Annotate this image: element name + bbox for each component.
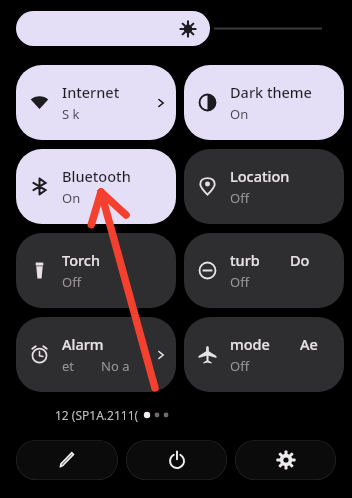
button[interactable]: Bluetooth xyxy=(16,149,176,224)
staticText: Location xyxy=(230,166,290,186)
button[interactable]: Power xyxy=(126,440,227,480)
button[interactable]: Brightness xyxy=(16,11,210,46)
button[interactable]: turb Do xyxy=(184,233,344,308)
staticText: Off xyxy=(230,189,250,207)
staticText: On xyxy=(230,105,249,123)
button[interactable]: Settings xyxy=(235,440,336,480)
staticText: 12 (SP1A.2111( xyxy=(55,407,139,423)
button[interactable]: Location xyxy=(184,149,344,224)
button[interactable]: Internet xyxy=(16,65,176,140)
staticText: Off xyxy=(230,273,250,291)
button[interactable]: mode Ae xyxy=(184,317,344,392)
staticText: mode Ae xyxy=(230,334,318,354)
staticText: Torch xyxy=(62,250,101,270)
staticText: Alarm xyxy=(62,334,104,354)
staticText: Off xyxy=(62,273,82,291)
staticText: Off xyxy=(230,357,250,375)
button[interactable]: Dark theme xyxy=(184,65,344,140)
staticText: Internet xyxy=(62,82,120,102)
staticText: turb Do xyxy=(230,250,310,270)
staticText: Dark theme xyxy=(230,82,312,102)
staticText: On xyxy=(62,189,81,207)
button[interactable]: Alarm xyxy=(16,317,176,392)
button[interactable]: Edit xyxy=(16,440,118,480)
staticText: S k xyxy=(62,105,80,123)
button[interactable]: Torch xyxy=(16,233,176,308)
staticText: et No a xyxy=(62,357,130,375)
staticText: Bluetooth xyxy=(62,166,131,186)
